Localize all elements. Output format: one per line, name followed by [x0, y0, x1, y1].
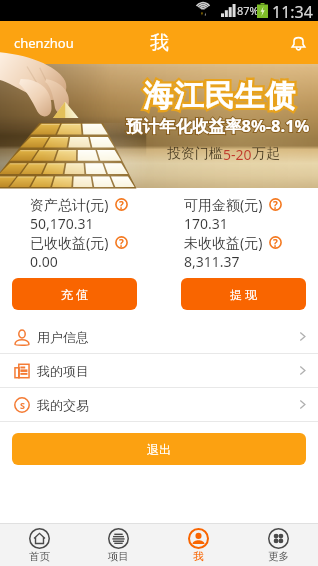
staticText: 退出 — [147, 442, 171, 457]
button[interactable]: 我的项目 — [0, 354, 318, 387]
staticText: 投资门槛 — [167, 145, 223, 163]
button[interactable]: 项目 — [79, 524, 158, 566]
staticText: 我 — [150, 31, 169, 55]
staticText: 用户信息 — [37, 329, 89, 345]
staticText: 提 现 — [230, 286, 258, 302]
staticText: ? — [119, 198, 124, 211]
staticText: 我的交易 — [37, 397, 89, 413]
staticText: 海江民生债 — [143, 77, 296, 115]
staticText: S — [20, 399, 25, 411]
button[interactable]: Notifications — [278, 21, 318, 64]
staticText: 170.31 — [184, 214, 228, 233]
button[interactable]: 海江民生债 — [0, 64, 318, 188]
staticText: 5-20 — [223, 145, 252, 164]
button[interactable]: 我 — [158, 524, 238, 566]
staticText: 已收收益(元) — [30, 233, 109, 252]
staticText: 预计年化收益率8%-8.1% — [126, 114, 310, 137]
button[interactable]: 提 现 — [181, 278, 306, 310]
staticText: chenzhou — [14, 34, 74, 52]
staticText: 项目 — [108, 550, 129, 563]
staticText: 海江民生债 — [143, 77, 296, 115]
button[interactable]: 用户信息 — [0, 320, 318, 353]
staticText: 0.00 — [30, 252, 58, 271]
staticText: ? — [119, 236, 124, 249]
staticText: 可用金额(元) — [184, 195, 263, 214]
button[interactable]: 首页 — [0, 524, 79, 566]
staticText: 我 — [193, 550, 204, 563]
staticText: 8,311.37 — [184, 252, 240, 271]
staticText: 87% — [237, 3, 259, 18]
button[interactable]: 更多 — [238, 524, 318, 566]
button[interactable]: S — [0, 388, 318, 421]
staticText: 我的项目 — [37, 363, 89, 379]
staticText: 未收收益(元) — [184, 233, 263, 252]
button[interactable]: 退出 — [12, 433, 306, 465]
button[interactable]: 充 值 — [12, 278, 137, 310]
staticText: 更多 — [268, 550, 289, 563]
staticText: 预计年化收益率8%-8.1% — [126, 114, 310, 137]
staticText: 充 值 — [61, 286, 89, 302]
staticText: 资产总计(元) — [30, 195, 109, 214]
staticText: ? — [273, 236, 278, 249]
staticText: ? — [273, 198, 278, 211]
staticText: 50,170.31 — [30, 214, 94, 233]
staticText: 11:34 — [272, 1, 313, 22]
staticText: 首页 — [29, 550, 50, 563]
staticText: 万起 — [252, 145, 280, 163]
